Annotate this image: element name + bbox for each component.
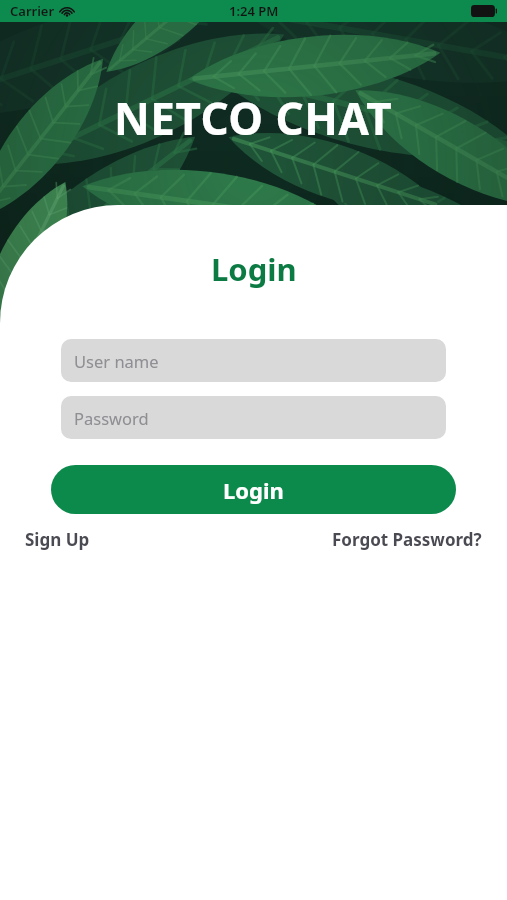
staticText: 1:24 PM [229, 2, 279, 20]
staticText: Sign Up [25, 528, 90, 551]
button[interactable]: Password [61, 396, 446, 439]
button[interactable]: Login [51, 465, 456, 514]
staticText: NETCO CHAT [114, 88, 393, 148]
staticText: Carrier [10, 2, 55, 20]
staticText: Password [74, 407, 149, 429]
staticText: Login [211, 248, 297, 290]
staticText: User name [74, 350, 159, 372]
button[interactable]: Sign Up [25, 524, 90, 555]
button[interactable]: User name [61, 339, 446, 382]
staticText: Login [223, 475, 284, 505]
staticText: Forgot Password? [332, 528, 482, 551]
button[interactable]: Forgot Password? [332, 524, 482, 555]
